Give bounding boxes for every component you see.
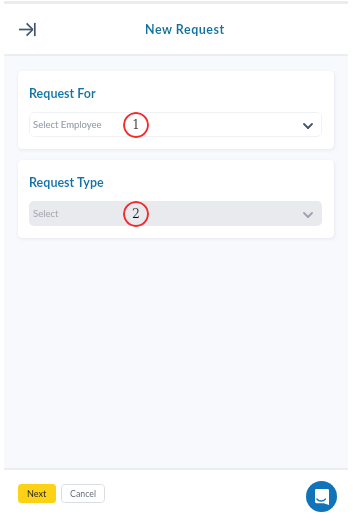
button[interactable]: Select bbox=[29, 201, 322, 226]
staticText: Cancel bbox=[70, 488, 96, 499]
button[interactable]: Close bbox=[12, 14, 42, 44]
button[interactable]: Cancel bbox=[61, 484, 105, 503]
staticText: New Request bbox=[145, 22, 225, 37]
button[interactable]: Select Employee bbox=[29, 112, 322, 137]
button[interactable]: Open chat bbox=[306, 481, 337, 512]
staticText: 2 bbox=[132, 206, 140, 221]
staticText: Request Type bbox=[29, 175, 104, 190]
staticText: Request For bbox=[29, 86, 96, 101]
staticText: Select bbox=[33, 208, 59, 219]
staticText: 1 bbox=[132, 117, 140, 132]
staticText: Select Employee bbox=[33, 119, 102, 130]
staticText: Next bbox=[27, 488, 47, 499]
button[interactable]: Next bbox=[18, 484, 56, 503]
